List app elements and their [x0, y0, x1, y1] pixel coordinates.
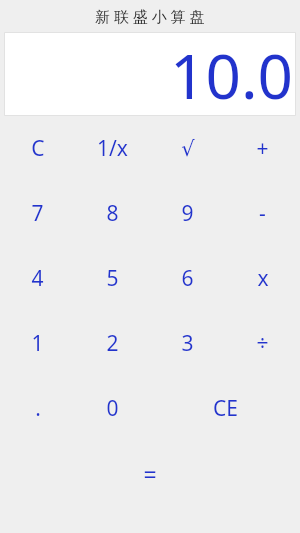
button[interactable]: 1/x — [75, 116, 150, 181]
button[interactable]: 2 — [75, 311, 150, 376]
staticText: x — [257, 264, 269, 293]
button[interactable]: + — [225, 116, 300, 181]
staticText: C — [31, 134, 45, 163]
staticText: 7 — [31, 199, 44, 228]
staticText: 2 — [106, 329, 119, 358]
staticText: - — [259, 199, 266, 228]
button[interactable]: ÷ — [225, 311, 300, 376]
button[interactable]: 5 — [75, 246, 150, 311]
staticText: 9 — [181, 199, 194, 228]
button[interactable]: - — [225, 181, 300, 246]
button[interactable]: 6 — [150, 246, 225, 311]
staticText: . — [35, 394, 41, 423]
button[interactable]: = — [75, 441, 225, 506]
button[interactable]: 3 — [150, 311, 225, 376]
button[interactable]: √ — [150, 116, 225, 181]
button[interactable]: C — [0, 116, 75, 181]
staticText: + — [256, 134, 269, 163]
button[interactable]: 10.0 — [5, 33, 295, 115]
staticText: 1 — [31, 329, 44, 358]
staticText: 3 — [181, 329, 194, 358]
button[interactable]: 0 — [75, 376, 150, 441]
button[interactable]: x — [225, 246, 300, 311]
button[interactable]: 7 — [0, 181, 75, 246]
staticText: CE — [213, 394, 238, 423]
staticText: √ — [181, 137, 195, 161]
button[interactable]: 4 — [0, 246, 75, 311]
staticText: = — [143, 458, 157, 489]
button[interactable]: 1 — [0, 311, 75, 376]
staticText: 4 — [31, 264, 44, 293]
staticText: 5 — [106, 264, 119, 293]
staticText: ÷ — [256, 329, 269, 358]
button[interactable]: 9 — [150, 181, 225, 246]
button[interactable]: CE — [150, 376, 300, 441]
staticText: 6 — [181, 264, 194, 293]
staticText: 10.0 — [169, 33, 293, 109]
staticText: 8 — [106, 199, 119, 228]
staticText: 1/x — [97, 134, 128, 163]
staticText: 新 联 盛 小 算 盘 — [95, 6, 205, 26]
staticText: 0 — [106, 394, 119, 423]
button[interactable]: . — [0, 376, 75, 441]
button[interactable]: 8 — [75, 181, 150, 246]
